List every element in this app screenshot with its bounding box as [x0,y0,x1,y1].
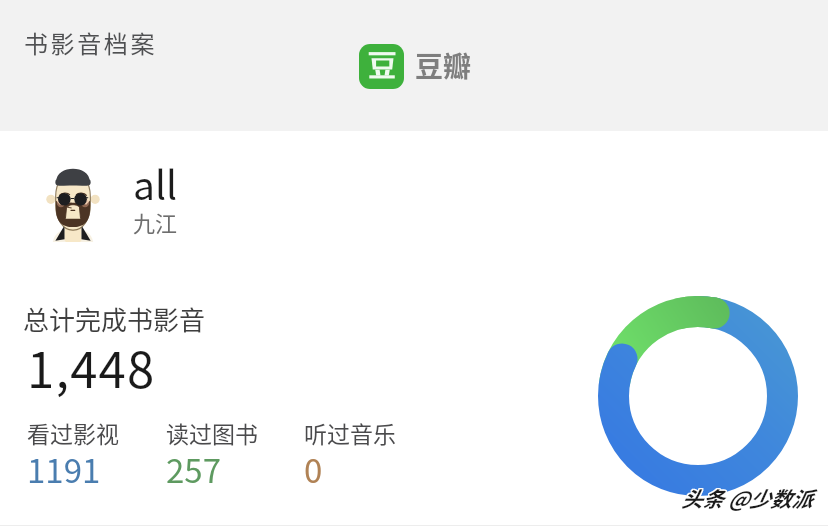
staticText: 听过音乐 [304,416,396,449]
button[interactable]: User avatar [45,160,101,242]
button[interactable]: all [133,155,178,211]
staticText: 头条 @少数派 [682,484,813,514]
staticText: 豆瓣 [415,45,472,86]
staticText: 读过图书 [166,416,258,449]
staticText: 头条 @少数派 [681,483,812,513]
staticText: 头条 @少数派 [681,484,812,514]
staticText: 头条 @少数派 [680,483,811,513]
button[interactable]: 听过音乐 [304,416,439,496]
button[interactable]: 读过图书 [166,416,301,496]
staticText: 看过影视 [27,416,119,449]
staticText: 头条 @少数派 [681,482,812,512]
staticText: 头条 @少数派 [682,482,813,512]
staticText: 257 [166,445,221,493]
button[interactable]: Douban logo [359,44,472,89]
button[interactable]: Statistics donut chart [598,296,798,496]
button[interactable]: 看过影视 [27,416,162,496]
staticText: 书影音档案 [24,25,157,60]
staticText: 0 [304,445,323,493]
staticText: 头条 @少数派 [680,482,811,512]
staticText: 头条 @少数派 [682,483,813,513]
staticText: 1,448 [27,331,156,402]
staticText: 1191 [27,445,101,493]
staticText: 总计完成书影音 [23,300,206,338]
button[interactable]: 九江 [133,206,178,238]
other: Douban logo [359,44,404,89]
staticText: 头条 @少数派 [680,484,811,514]
